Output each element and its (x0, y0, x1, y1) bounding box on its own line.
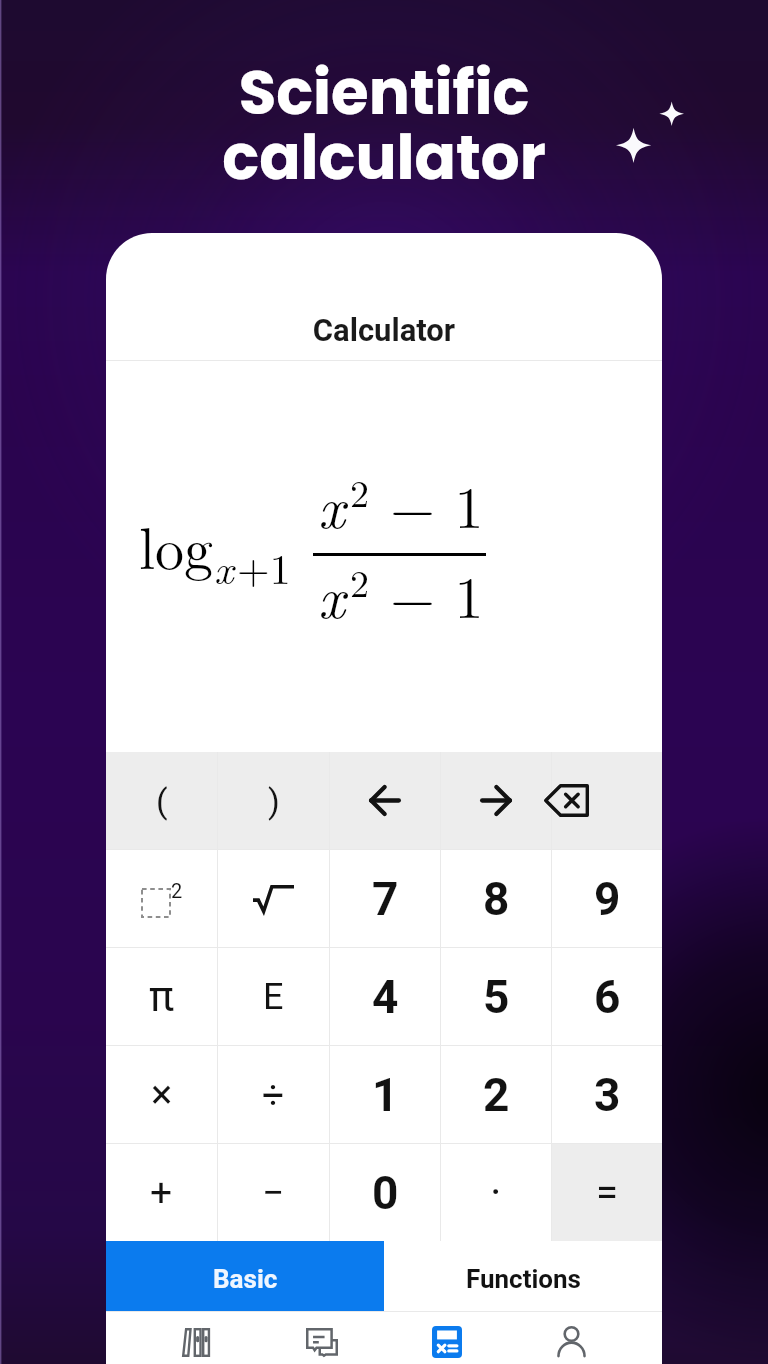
staticText: ÷ (262, 1072, 285, 1118)
button[interactable]: 7 (330, 850, 440, 947)
button[interactable]: E (218, 948, 329, 1045)
button[interactable]: Library (134, 1312, 259, 1364)
staticText: − 1 (390, 553, 484, 635)
staticText: E (263, 976, 284, 1018)
button[interactable]: Move cursor right (441, 752, 551, 849)
button[interactable]: Square (106, 850, 217, 947)
staticText: 2 (171, 879, 183, 902)
staticText: ( (156, 781, 168, 821)
staticText: 8 (483, 872, 510, 926)
staticText: log (139, 504, 214, 586)
button[interactable]: 8 (441, 850, 551, 947)
button[interactable]: Basic (106, 1241, 384, 1311)
button[interactable]: 6 (552, 948, 662, 1045)
button[interactable]: 0 (330, 1144, 440, 1241)
staticText: × (151, 1071, 173, 1118)
staticText: Calculator (106, 312, 662, 348)
staticText: · (490, 1167, 502, 1219)
button[interactable]: Profile (509, 1312, 634, 1364)
staticText: − (262, 1170, 285, 1216)
staticText: − 1 (390, 463, 484, 545)
staticText: π (149, 972, 175, 1021)
staticText: 2 (483, 1068, 510, 1122)
staticText: ) (268, 781, 280, 821)
staticText: 5 (483, 970, 510, 1024)
button[interactable]: · (441, 1144, 551, 1241)
staticText: 7 (372, 872, 399, 926)
staticText: 0 (372, 1166, 399, 1220)
button[interactable]: π (106, 948, 217, 1045)
button[interactable]: 9 (552, 850, 662, 947)
staticText: 6 (594, 970, 621, 1024)
staticText: 4 (372, 970, 399, 1024)
staticText: Functions (466, 1264, 581, 1294)
button[interactable]: 2 (441, 1046, 551, 1143)
staticText: = (596, 1169, 618, 1216)
staticText: x (318, 553, 345, 635)
staticText: 2 (350, 464, 370, 518)
staticText: x (214, 537, 234, 596)
button[interactable]: ) (218, 752, 329, 849)
button[interactable]: Backspace (552, 752, 662, 849)
staticText: x (318, 463, 345, 545)
button[interactable]: 4 (330, 948, 440, 1045)
button[interactable]: Move cursor left (330, 752, 440, 849)
button[interactable]: = (552, 1144, 662, 1241)
button[interactable]: Chats (259, 1312, 384, 1364)
staticText: 3 (594, 1068, 621, 1122)
button[interactable]: 3 (552, 1046, 662, 1143)
staticText: 2 (350, 554, 370, 608)
staticText: 9 (594, 872, 621, 926)
button[interactable]: 1 (330, 1046, 440, 1143)
button[interactable]: − (218, 1144, 329, 1241)
staticText: Basic (213, 1264, 278, 1294)
button[interactable]: + (106, 1144, 217, 1241)
button[interactable]: ÷ (218, 1046, 329, 1143)
button[interactable]: 5 (441, 948, 551, 1045)
staticText: Scientific calculator (0, 50, 768, 200)
button[interactable]: Functions (384, 1241, 662, 1311)
button[interactable]: Calculator (384, 1312, 509, 1364)
button[interactable]: × (106, 1046, 217, 1143)
button[interactable]: Square root (218, 850, 329, 947)
button[interactable]: ( (106, 752, 217, 849)
staticText: + (150, 1170, 173, 1216)
staticText: 1 (372, 1068, 399, 1122)
staticText: +1 (237, 537, 291, 597)
